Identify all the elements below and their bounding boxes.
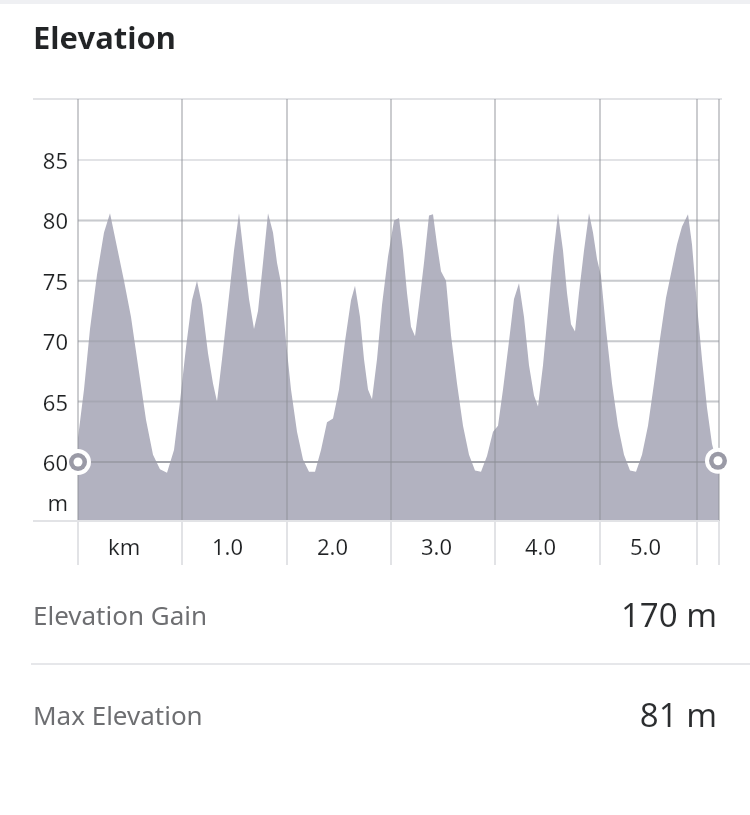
staticText: 1.0	[212, 531, 244, 561]
staticText: Elevation Gain	[33, 597, 208, 632]
staticText: 81 m	[639, 692, 717, 737]
staticText: m	[47, 487, 68, 517]
staticText: 70	[42, 326, 68, 356]
button[interactable]: Max Elevation	[0, 665, 750, 763]
staticText: Elevation	[33, 16, 177, 58]
staticText: 4.0	[525, 531, 557, 561]
button[interactable]: 85	[0, 70, 750, 565]
staticText: 80	[42, 205, 68, 235]
staticText: 85	[42, 145, 68, 175]
button[interactable]: Elevation Gain	[0, 565, 750, 663]
staticText: 2.0	[317, 531, 349, 561]
staticText: 60	[42, 447, 68, 477]
staticText: 170 m	[620, 592, 717, 637]
staticText: 5.0	[630, 531, 662, 561]
staticText: Max Elevation	[33, 697, 203, 732]
staticText: 75	[42, 266, 68, 296]
staticText: 3.0	[421, 531, 453, 561]
staticText: km	[108, 531, 141, 561]
staticText: 65	[42, 387, 68, 417]
